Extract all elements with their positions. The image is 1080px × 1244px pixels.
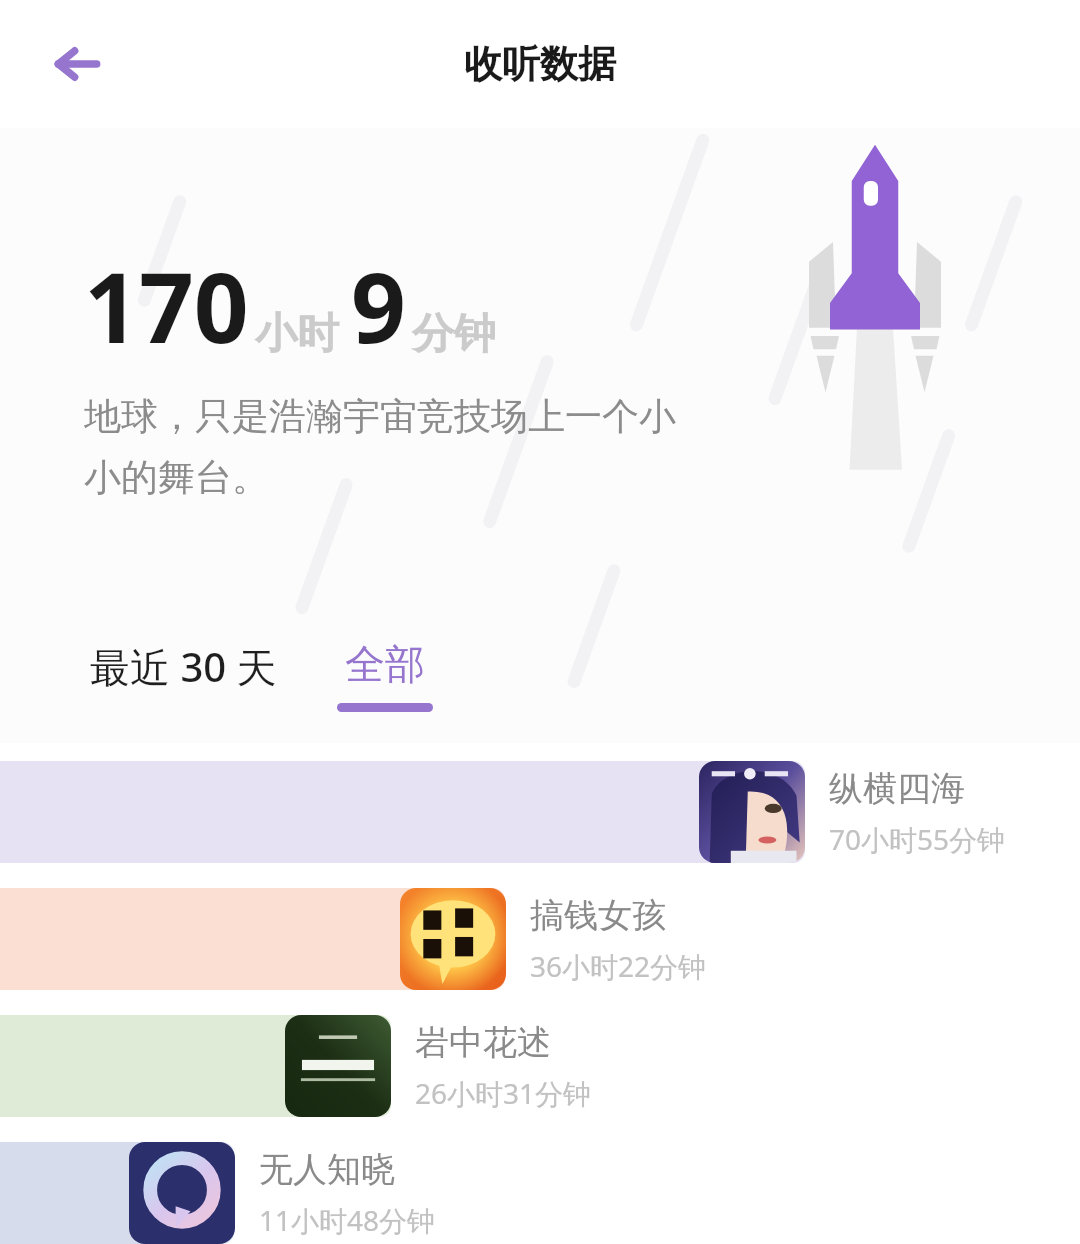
staticText: 全部 (345, 639, 425, 689)
button[interactable]: 纵横四海 (0, 761, 1080, 863)
button[interactable]: 岩中花述 (0, 1015, 1080, 1117)
staticText: 36小时22分钟 (530, 947, 707, 985)
button[interactable]: 无人知晓 (0, 1142, 1080, 1244)
staticText: 11小时48分钟 (259, 1201, 436, 1239)
staticText: 纵横四海 (829, 767, 965, 810)
staticText: 小时 (255, 308, 339, 361)
button[interactable]: 最近 30 天 (84, 635, 283, 721)
button[interactable]: 全部 (331, 635, 439, 716)
staticText: 最近 30 天 (90, 639, 277, 694)
staticText: 无人知晓 (259, 1148, 395, 1191)
staticText: 26小时31分钟 (415, 1074, 592, 1112)
staticText: 地球，只是浩瀚宇宙竞技场上一个小 (84, 393, 676, 440)
staticText: 搞钱女孩 (530, 894, 666, 937)
button[interactable]: Back (44, 32, 108, 96)
staticText: 70小时55分钟 (829, 820, 1006, 858)
button[interactable]: 搞钱女孩 (0, 888, 1080, 990)
staticText: 小的舞台。 (84, 454, 269, 501)
staticText: 分钟 (412, 308, 496, 361)
staticText: 岩中花述 (415, 1021, 551, 1064)
staticText: 收听数据 (464, 40, 616, 88)
staticText: 9 (351, 240, 406, 371)
staticText: 170 (84, 240, 249, 371)
